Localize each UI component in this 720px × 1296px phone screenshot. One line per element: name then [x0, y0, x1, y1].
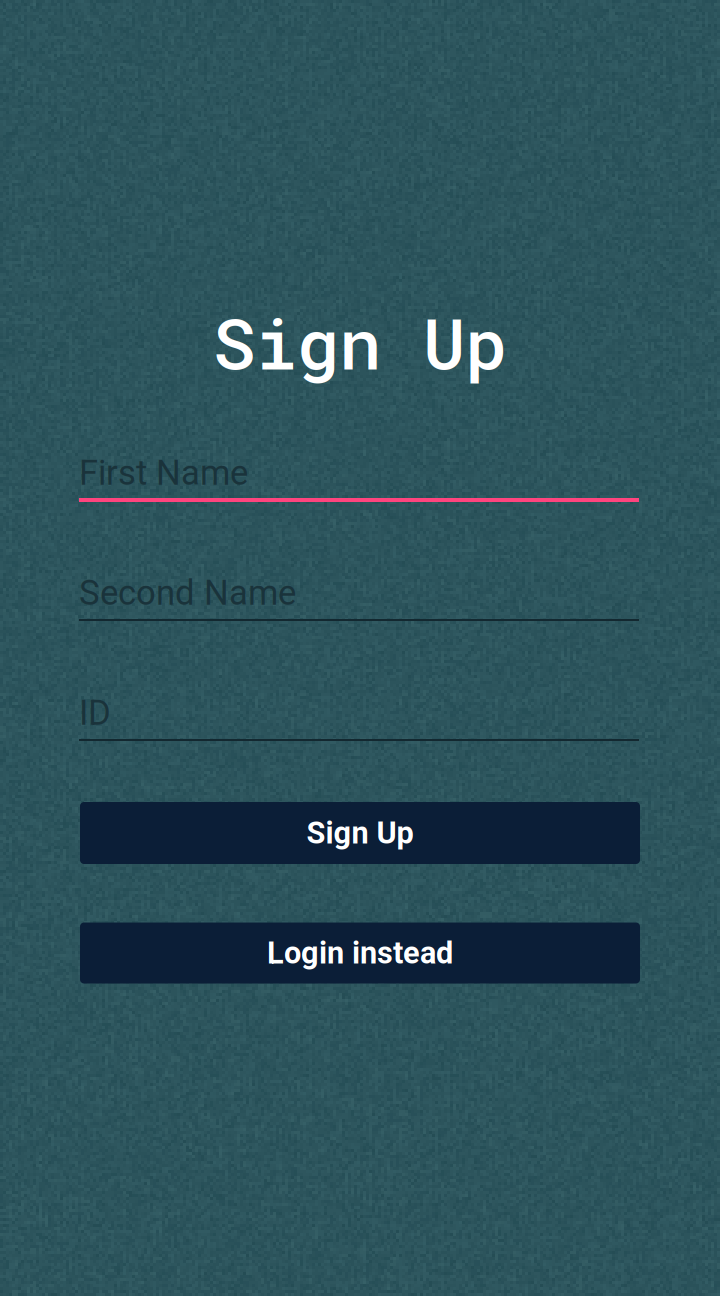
staticText: First Name	[79, 453, 248, 493]
staticText: Second Name	[79, 573, 296, 613]
staticText: Sign Up	[213, 295, 507, 389]
button[interactable]: ID	[79, 684, 639, 762]
button[interactable]: Sign Up	[80, 802, 640, 864]
staticText: ID	[79, 693, 111, 733]
button[interactable]: Second Name	[79, 564, 639, 642]
button[interactable]: Login instead	[80, 922, 640, 983]
button[interactable]: First Name	[79, 444, 639, 522]
staticText: Sign Up	[306, 815, 413, 851]
staticText: Login instead	[267, 935, 453, 971]
